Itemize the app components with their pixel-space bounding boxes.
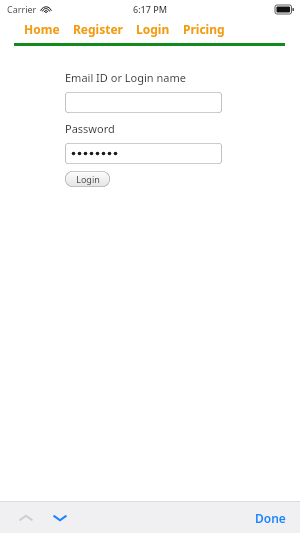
button[interactable]: Next field xyxy=(48,506,72,530)
staticText: 6:17 PM xyxy=(133,3,167,15)
button[interactable]: Previous field xyxy=(14,506,38,530)
staticText: Register xyxy=(73,21,123,37)
staticText: Done xyxy=(255,510,286,526)
button[interactable] xyxy=(65,143,222,164)
button[interactable]: Login xyxy=(136,21,170,37)
staticText: Login xyxy=(136,21,170,37)
staticText: Home xyxy=(24,21,60,37)
button[interactable]: Pricing xyxy=(183,21,225,37)
button[interactable]: Register xyxy=(73,21,123,37)
staticText: Pricing xyxy=(183,21,225,37)
button[interactable]: Home xyxy=(24,21,60,37)
button[interactable] xyxy=(65,92,222,113)
staticText: Login xyxy=(76,173,100,185)
staticText: Password xyxy=(65,121,115,136)
staticText: Email ID or Login name xyxy=(65,70,186,85)
button[interactable]: Done xyxy=(251,507,290,529)
button[interactable]: Login xyxy=(65,171,110,187)
staticText: Carrier xyxy=(7,3,37,15)
